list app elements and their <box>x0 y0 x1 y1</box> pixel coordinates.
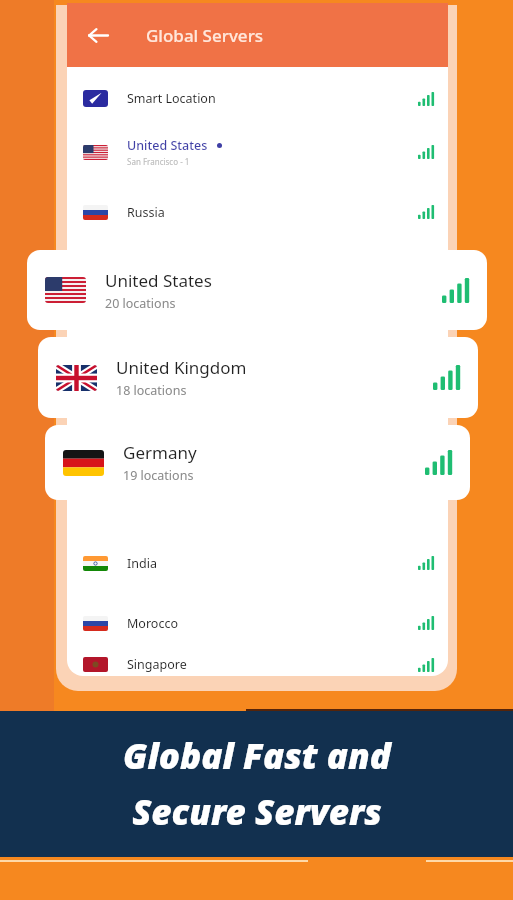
staticText: Global Servers <box>146 24 264 47</box>
staticText: India <box>127 555 157 572</box>
staticText: Global Fast and <box>123 732 391 780</box>
staticText: 18 locations <box>116 382 187 399</box>
staticText: United States <box>105 269 212 292</box>
button[interactable]: India <box>67 533 448 593</box>
staticText: 20 locations <box>105 295 176 312</box>
button[interactable]: Smart Location <box>67 76 448 121</box>
button[interactable]: Germany <box>45 425 470 500</box>
button[interactable]: United Kingdom <box>38 337 478 418</box>
button[interactable]: United States <box>67 121 448 183</box>
staticText: Singapore <box>127 656 187 673</box>
staticText: San Francisco - 1 <box>127 156 190 167</box>
button[interactable]: Morocco <box>67 593 448 653</box>
staticText: Russia <box>127 204 165 221</box>
button[interactable]: Singapore <box>67 653 448 676</box>
staticText: Morocco <box>127 615 178 632</box>
button[interactable]: Back <box>75 13 119 57</box>
staticText: United Kingdom <box>116 356 247 379</box>
button[interactable]: United States <box>27 250 487 330</box>
staticText: United States <box>127 137 208 154</box>
staticText: Smart Location <box>127 90 216 107</box>
staticText: Secure Servers <box>132 788 382 836</box>
staticText: Germany <box>123 441 197 464</box>
staticText: 19 locations <box>123 467 194 484</box>
button[interactable]: Russia <box>67 183 448 241</box>
